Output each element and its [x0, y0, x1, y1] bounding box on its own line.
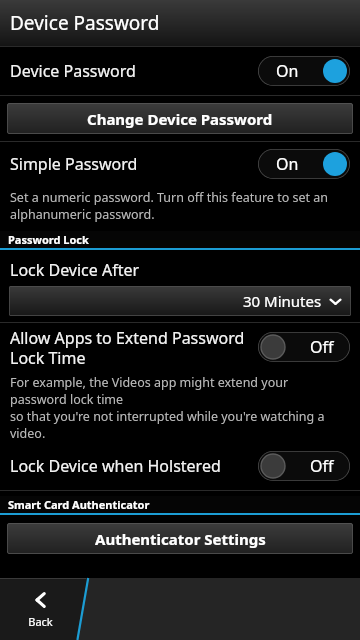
staticText: Device Password	[10, 60, 250, 82]
staticText: Allow Apps to Extend Password Lock Time	[10, 327, 250, 368]
button[interactable]: Lock Device when Holstered	[0, 448, 360, 484]
staticText: Authenticator Settings	[95, 529, 266, 549]
button[interactable]: Device Password	[0, 47, 360, 95]
staticText: Password Lock	[8, 232, 89, 247]
staticText: On	[276, 153, 299, 175]
button[interactable]: Authenticator Settings	[7, 523, 353, 554]
button[interactable]: Off	[258, 451, 350, 481]
staticText: Lock Device when Holstered	[10, 455, 250, 477]
staticText: For example, the Videos app might extend…	[10, 374, 346, 442]
staticText: Back	[28, 614, 53, 629]
staticText: Change Device Password	[87, 109, 273, 129]
button[interactable]: Allow Apps to Extend Password Lock Time	[0, 323, 360, 371]
staticText: Simple Password	[10, 153, 250, 175]
button[interactable]: Change Device Password	[7, 103, 353, 134]
staticText: 30 Minutes	[243, 291, 322, 311]
staticText: On	[276, 60, 299, 82]
staticText: Set a numeric password. Turn off this fe…	[10, 189, 346, 223]
staticText: Smart Card Authenticator	[8, 497, 150, 512]
staticText: Off	[310, 455, 334, 477]
button[interactable]: Back	[22, 584, 59, 635]
staticText: Off	[310, 336, 334, 358]
button[interactable]: Off	[258, 332, 350, 362]
button[interactable]: 30 Minutes	[9, 286, 351, 316]
staticText: Lock Device After	[10, 259, 140, 281]
staticText: Device Password	[10, 10, 160, 36]
button[interactable]: Simple Password	[0, 142, 360, 186]
button[interactable]: On	[258, 56, 350, 86]
button[interactable]: On	[258, 149, 350, 179]
